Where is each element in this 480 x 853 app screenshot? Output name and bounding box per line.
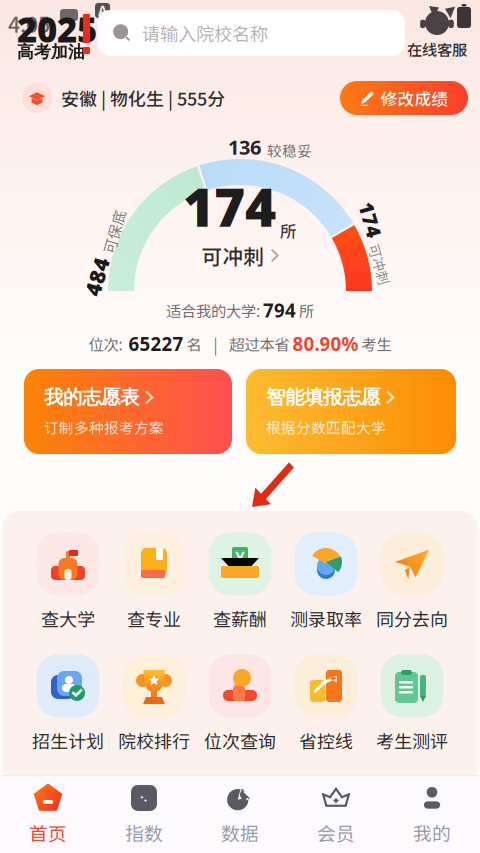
staticText: 所 <box>296 299 314 321</box>
staticText: 名 | 超过本省 <box>183 333 292 355</box>
button[interactable]: 招生计划 <box>25 655 111 753</box>
button[interactable]: 修改成绩 <box>340 81 468 115</box>
staticText: 根据分数匹配大学 <box>266 417 386 438</box>
staticText: 我的志愿表 <box>44 385 139 410</box>
staticText: 65227 <box>128 331 183 356</box>
staticText: 查大学 <box>41 605 95 632</box>
button[interactable]: 174 <box>160 198 320 270</box>
staticText: 订制多种报考方案 <box>44 417 164 438</box>
staticText: 查专业 <box>127 605 181 632</box>
staticText: 院校排行 <box>118 727 190 754</box>
staticText: 在线客服 <box>407 38 467 60</box>
staticText: 794 <box>263 298 296 323</box>
button[interactable]: 会员 <box>288 776 384 853</box>
staticText: 省控线 <box>299 727 353 754</box>
staticText: 安徽 | 物化生 | 555分 <box>61 85 225 111</box>
staticText: 请输入院校名称 <box>142 20 268 46</box>
button[interactable]: 我的志愿表 <box>24 369 232 454</box>
staticText: 修改成绩 <box>380 86 448 110</box>
button[interactable]: 同分去向 <box>369 533 455 631</box>
button[interactable]: 查大学 <box>25 533 111 631</box>
button[interactable]: 考生测评 <box>369 655 455 753</box>
staticText: 174 <box>335 229 371 257</box>
staticText: 可冲刺 <box>201 240 264 270</box>
button[interactable]: 位次查询 <box>197 655 283 753</box>
staticText: 80.90% <box>292 331 358 356</box>
button[interactable]: 查专业 <box>111 533 197 631</box>
staticText: 考生测评 <box>376 727 448 754</box>
button[interactable]: 请输入院校名称 <box>97 10 405 56</box>
staticText: 可冲刺 <box>377 236 419 257</box>
staticText: 查薪酬 <box>213 605 267 632</box>
staticText: 招生计划 <box>32 727 104 754</box>
button[interactable]: 测录取率 <box>283 533 369 631</box>
button[interactable]: 首页 <box>0 776 96 853</box>
staticText: 智能填报志愿 <box>266 385 380 410</box>
staticText: 适合我的大学: <box>166 299 263 321</box>
staticText: ¥ <box>235 546 245 570</box>
staticText: 484 <box>59 237 98 267</box>
button[interactable]: 我的 <box>384 776 480 853</box>
staticText: A <box>98 1 107 20</box>
staticText: 174 <box>183 170 276 242</box>
staticText: 4:05 <box>8 8 50 39</box>
staticText: 测录取率 <box>290 605 362 632</box>
staticText: 首页 <box>29 819 67 846</box>
staticText: 数据 <box>221 819 259 846</box>
staticText: 位次: <box>88 333 128 355</box>
staticText: 所 <box>280 218 297 242</box>
button[interactable]: 数据 <box>192 776 288 853</box>
staticText: 指数 <box>125 819 163 846</box>
staticText: 2025 <box>17 5 97 53</box>
button[interactable]: 指数 <box>96 776 192 853</box>
staticText: 同分去向 <box>376 605 448 632</box>
staticText: 我的 <box>413 819 451 846</box>
button[interactable]: 智能填报志愿 <box>246 369 456 454</box>
staticText: 可保底 <box>104 245 149 266</box>
button[interactable]: 在线客服 <box>405 3 469 59</box>
staticText: 会员 <box>317 819 355 846</box>
button[interactable]: ¥ <box>197 533 283 631</box>
staticText: 高考加油 <box>17 41 85 62</box>
staticText: 136 <box>228 133 261 161</box>
staticText: 较稳妥 <box>267 139 312 161</box>
button[interactable]: 省控线 <box>283 655 369 753</box>
staticText: 位次查询 <box>204 727 276 754</box>
staticText: 考生 <box>358 333 391 355</box>
button[interactable]: 院校排行 <box>111 655 197 753</box>
